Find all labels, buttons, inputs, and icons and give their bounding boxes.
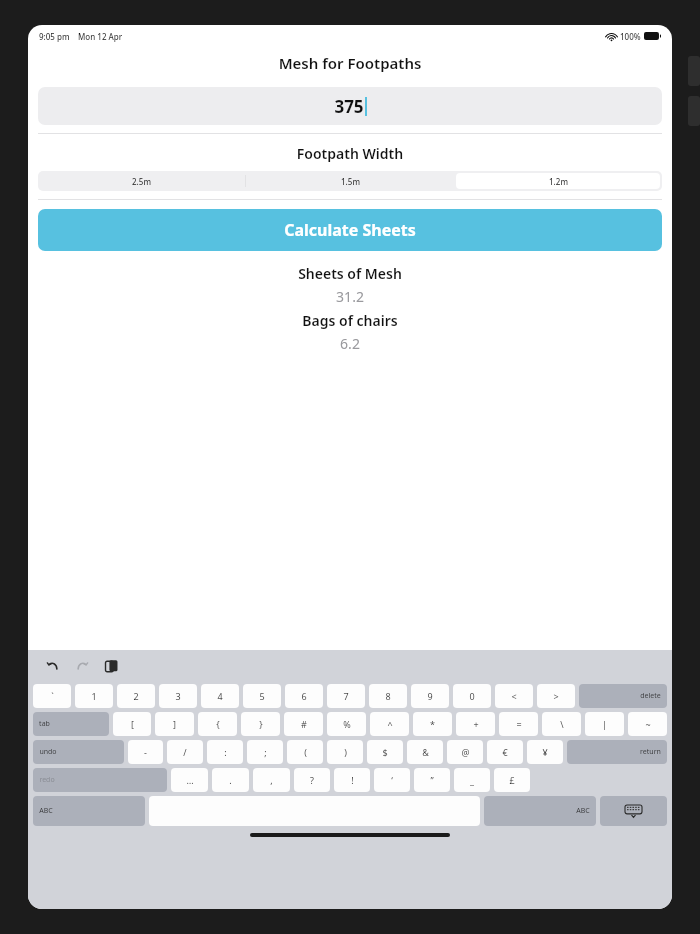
- button[interactable]: 3: [159, 684, 197, 708]
- staticText: `: [51, 690, 54, 702]
- staticText: =: [516, 718, 522, 730]
- staticText: \: [560, 718, 564, 730]
- button[interactable]: 6: [285, 684, 323, 708]
- staticText: 2.5m: [132, 176, 151, 187]
- button[interactable]: 1: [75, 684, 113, 708]
- button[interactable]: ): [327, 740, 363, 764]
- staticText: 5: [259, 690, 265, 702]
- button[interactable]: 375: [38, 87, 662, 125]
- staticText: Footpath Width: [28, 144, 672, 163]
- button[interactable]: =: [499, 712, 538, 736]
- staticText: 6.2: [28, 334, 672, 353]
- staticText: ?: [310, 774, 314, 786]
- staticText: …: [186, 774, 194, 786]
- staticText: 375: [334, 95, 364, 118]
- button[interactable]: ”: [414, 768, 450, 792]
- staticText: 1: [91, 690, 97, 702]
- button[interactable]: …: [171, 768, 208, 792]
- button[interactable]: Undo: [40, 653, 66, 679]
- button[interactable]: 0: [453, 684, 491, 708]
- button[interactable]: *: [413, 712, 452, 736]
- button[interactable]: |: [585, 712, 624, 736]
- button[interactable]: 2: [117, 684, 155, 708]
- button[interactable]: 1.5m: [248, 173, 452, 189]
- button[interactable]: ,: [253, 768, 290, 792]
- button[interactable]: 7: [327, 684, 365, 708]
- button[interactable]: ^: [370, 712, 409, 736]
- button[interactable]: 4: [201, 684, 239, 708]
- staticText: 100%: [620, 31, 641, 42]
- button[interactable]: &: [407, 740, 443, 764]
- staticText: Mon 12 Apr: [78, 31, 123, 42]
- button[interactable]: :: [207, 740, 243, 764]
- button[interactable]: 8: [369, 684, 407, 708]
- button[interactable]: ¥: [527, 740, 563, 764]
- button[interactable]: @: [447, 740, 483, 764]
- button[interactable]: ‘: [374, 768, 410, 792]
- button[interactable]: ~: [628, 712, 667, 736]
- staticText: ABC: [39, 806, 53, 816]
- button[interactable]: delete: [579, 684, 667, 708]
- staticText: +: [473, 718, 479, 730]
- staticText: /: [183, 746, 187, 758]
- button[interactable]: {: [198, 712, 237, 736]
- button[interactable]: -: [128, 740, 163, 764]
- button[interactable]: >: [537, 684, 575, 708]
- button[interactable]: `: [33, 684, 71, 708]
- button[interactable]: 9: [411, 684, 449, 708]
- button[interactable]: (: [287, 740, 323, 764]
- button[interactable]: Calculate Sheets: [38, 209, 662, 251]
- staticText: {: [216, 718, 220, 730]
- staticText: return: [640, 747, 661, 757]
- button[interactable]: 2.5m: [40, 173, 243, 189]
- staticText: 9: [427, 690, 433, 702]
- button[interactable]: .: [212, 768, 249, 792]
- staticText: 9:05 pm: [39, 31, 70, 42]
- staticText: #: [301, 718, 307, 730]
- button[interactable]: Paste: [98, 653, 124, 679]
- button[interactable]: ;: [247, 740, 283, 764]
- button[interactable]: Redo: [69, 653, 95, 679]
- staticText: .: [229, 774, 232, 786]
- button[interactable]: _: [454, 768, 490, 792]
- button[interactable]: %: [327, 712, 366, 736]
- button[interactable]: return: [567, 740, 667, 764]
- button[interactable]: €: [487, 740, 523, 764]
- button[interactable]: tab: [33, 712, 109, 736]
- staticText: ): [344, 746, 347, 758]
- button[interactable]: [: [113, 712, 151, 736]
- button[interactable]: \: [542, 712, 581, 736]
- button[interactable]: 5: [243, 684, 281, 708]
- button[interactable]: Hide keyboard: [600, 796, 667, 826]
- button[interactable]: #: [284, 712, 323, 736]
- button[interactable]: +: [456, 712, 495, 736]
- staticText: 3: [175, 690, 181, 702]
- staticText: 6: [301, 690, 307, 702]
- button[interactable]: ]: [155, 712, 194, 736]
- button[interactable]: $: [367, 740, 403, 764]
- button[interactable]: ABC: [33, 796, 145, 826]
- staticText: 1.2m: [549, 176, 568, 187]
- staticText: undo: [39, 747, 57, 757]
- button[interactable]: ABC: [484, 796, 596, 826]
- staticText: :: [224, 746, 227, 758]
- staticText: £: [509, 774, 515, 786]
- button[interactable]: 1.2m: [456, 173, 660, 189]
- staticText: Mesh for Footpaths: [28, 53, 672, 73]
- button[interactable]: undo: [33, 740, 124, 764]
- staticText: ~: [645, 718, 651, 730]
- staticText: *: [430, 718, 435, 730]
- button[interactable]: !: [334, 768, 370, 792]
- button[interactable]: }: [241, 712, 280, 736]
- button[interactable]: ?: [294, 768, 330, 792]
- button[interactable]: £: [494, 768, 530, 792]
- button[interactable]: <: [495, 684, 533, 708]
- staticText: redo: [39, 775, 55, 785]
- staticText: 8: [385, 690, 391, 702]
- staticText: ,: [270, 774, 273, 786]
- button[interactable]: /: [167, 740, 203, 764]
- staticText: 4: [217, 690, 223, 702]
- staticText: ABC: [576, 806, 590, 816]
